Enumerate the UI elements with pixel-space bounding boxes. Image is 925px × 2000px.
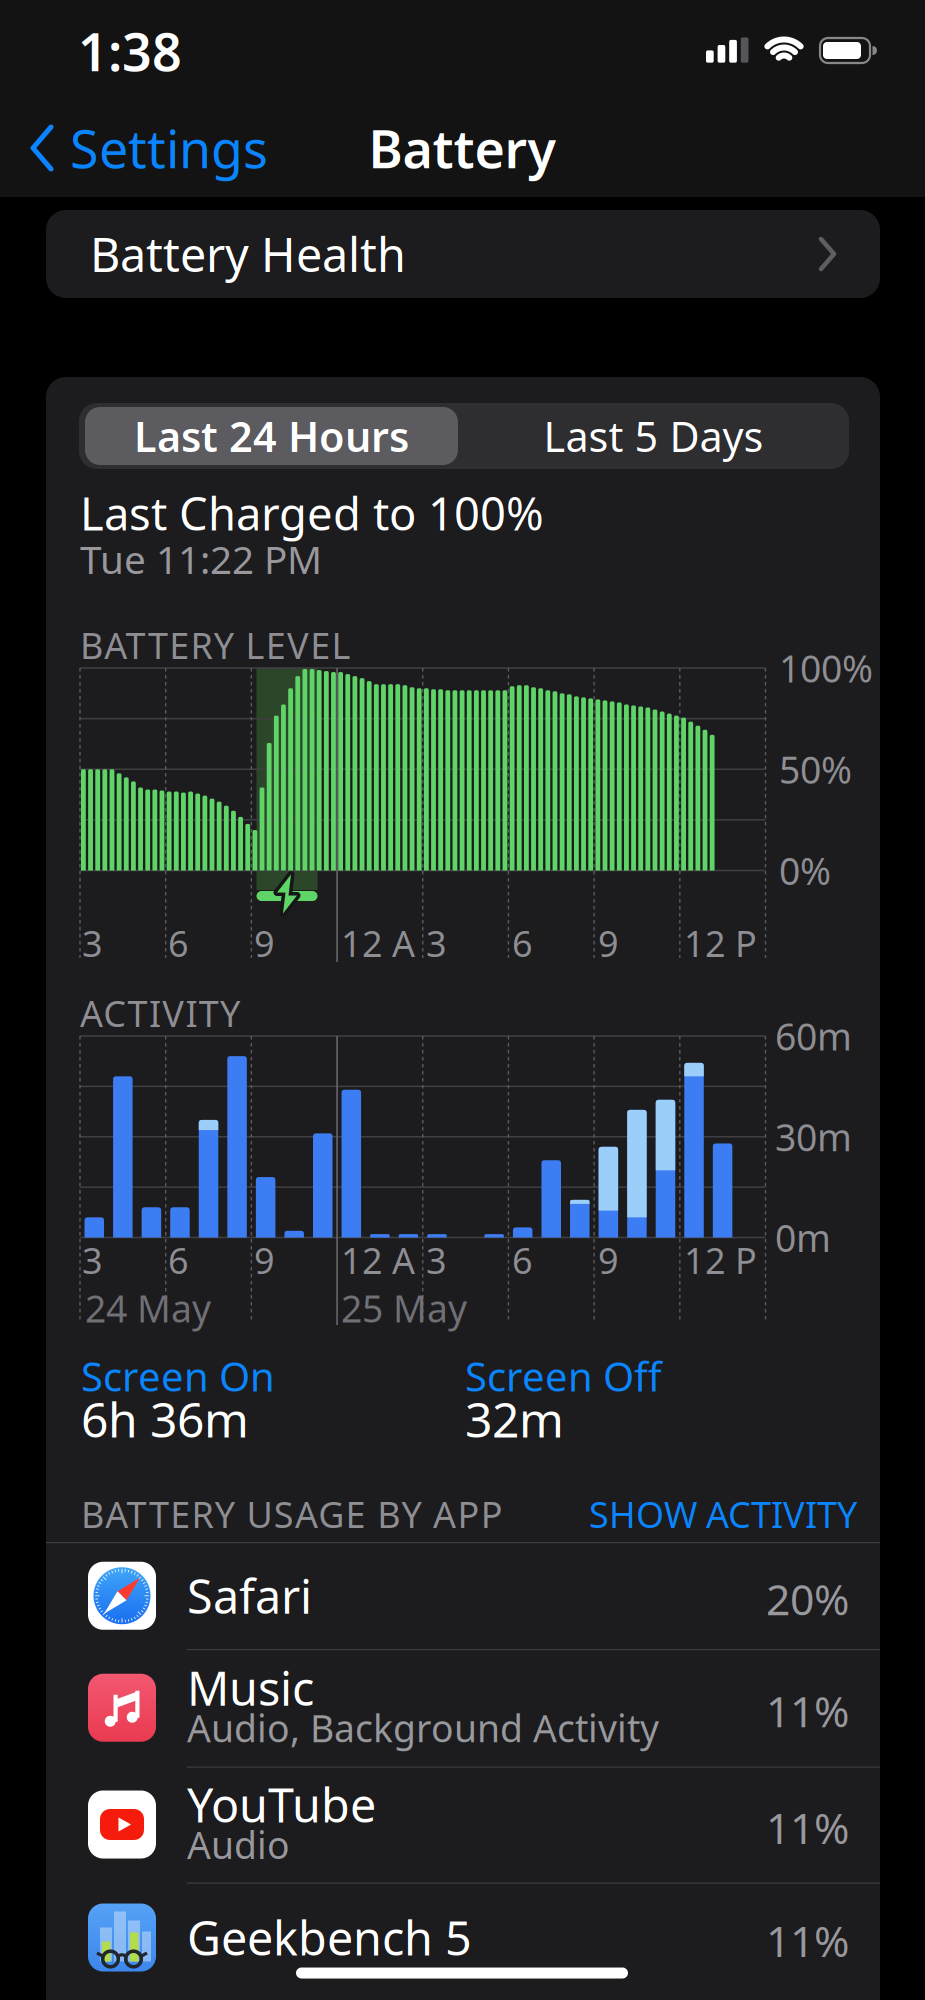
staticText: 9: [598, 919, 619, 967]
staticText: 32m: [465, 1387, 564, 1451]
button[interactable]: Last 24 Hours: [85, 407, 458, 465]
button[interactable]: Geekbench 5: [46, 1882, 880, 1992]
staticText: YouTube: [187, 1773, 376, 1835]
staticText: 12 A: [341, 1236, 415, 1284]
button[interactable]: SHOW ACTIVITY: [457, 1490, 857, 1538]
staticText: 9: [598, 1236, 619, 1284]
staticText: Settings: [70, 113, 268, 183]
staticText: Audio: [187, 1820, 290, 1869]
staticText: Battery Health: [90, 223, 406, 285]
button[interactable]: Safari: [46, 1542, 880, 1649]
staticText: 60m: [775, 1011, 852, 1061]
staticText: SHOW ACTIVITY: [589, 1490, 857, 1538]
staticText: 30m: [775, 1112, 852, 1162]
staticText: 3: [82, 1236, 103, 1284]
button[interactable]: Last 5 Days: [463, 405, 843, 467]
staticText: ACTIVITY: [80, 989, 240, 1037]
staticText: 11%: [766, 1799, 849, 1856]
staticText: 6: [168, 919, 189, 967]
staticText: Screen On: [81, 1349, 275, 1402]
staticText: 100%: [779, 643, 873, 693]
staticText: 12 P: [684, 919, 757, 967]
staticText: 11%: [766, 1912, 849, 1969]
staticText: 50%: [779, 744, 852, 794]
staticText: 20%: [766, 1570, 849, 1627]
button[interactable]: Battery Health: [46, 210, 880, 298]
staticText: 9: [254, 919, 275, 967]
staticText: 6: [168, 1236, 189, 1284]
staticText: 24 May: [85, 1283, 211, 1333]
staticText: 12 A: [341, 919, 415, 967]
staticText: Battery: [368, 113, 555, 183]
staticText: 1:38: [78, 16, 182, 86]
staticText: 3: [426, 919, 447, 967]
staticText: 0%: [779, 846, 831, 895]
staticText: Tue 11:22 PM: [80, 533, 322, 585]
staticText: Last 24 Hours: [134, 409, 409, 463]
staticText: 9: [254, 1236, 275, 1284]
staticText: 6: [512, 919, 533, 967]
staticText: Music: [187, 1657, 314, 1719]
staticText: 0m: [775, 1213, 831, 1262]
button[interactable]: Music: [46, 1649, 880, 1766]
staticText: Audio, Background Activity: [187, 1703, 659, 1753]
button[interactable]: YouTube: [46, 1766, 880, 1882]
staticText: 11%: [766, 1682, 849, 1739]
staticText: 3: [426, 1236, 447, 1284]
staticText: 6: [512, 1236, 533, 1284]
staticText: Geekbench 5: [187, 1906, 472, 1968]
button[interactable]: Settings: [30, 113, 390, 183]
staticText: Last Charged to 100%: [80, 483, 544, 543]
staticText: BATTERY USAGE BY APP: [81, 1490, 503, 1538]
staticText: 6h 36m: [81, 1387, 249, 1451]
staticText: Safari: [187, 1565, 312, 1627]
staticText: 12 P: [684, 1236, 757, 1284]
staticText: 25 May: [341, 1283, 467, 1333]
staticText: Screen Off: [465, 1349, 662, 1402]
staticText: BATTERY LEVEL: [80, 621, 351, 669]
staticText: 3: [82, 919, 103, 967]
staticText: Last 5 Days: [543, 409, 763, 463]
